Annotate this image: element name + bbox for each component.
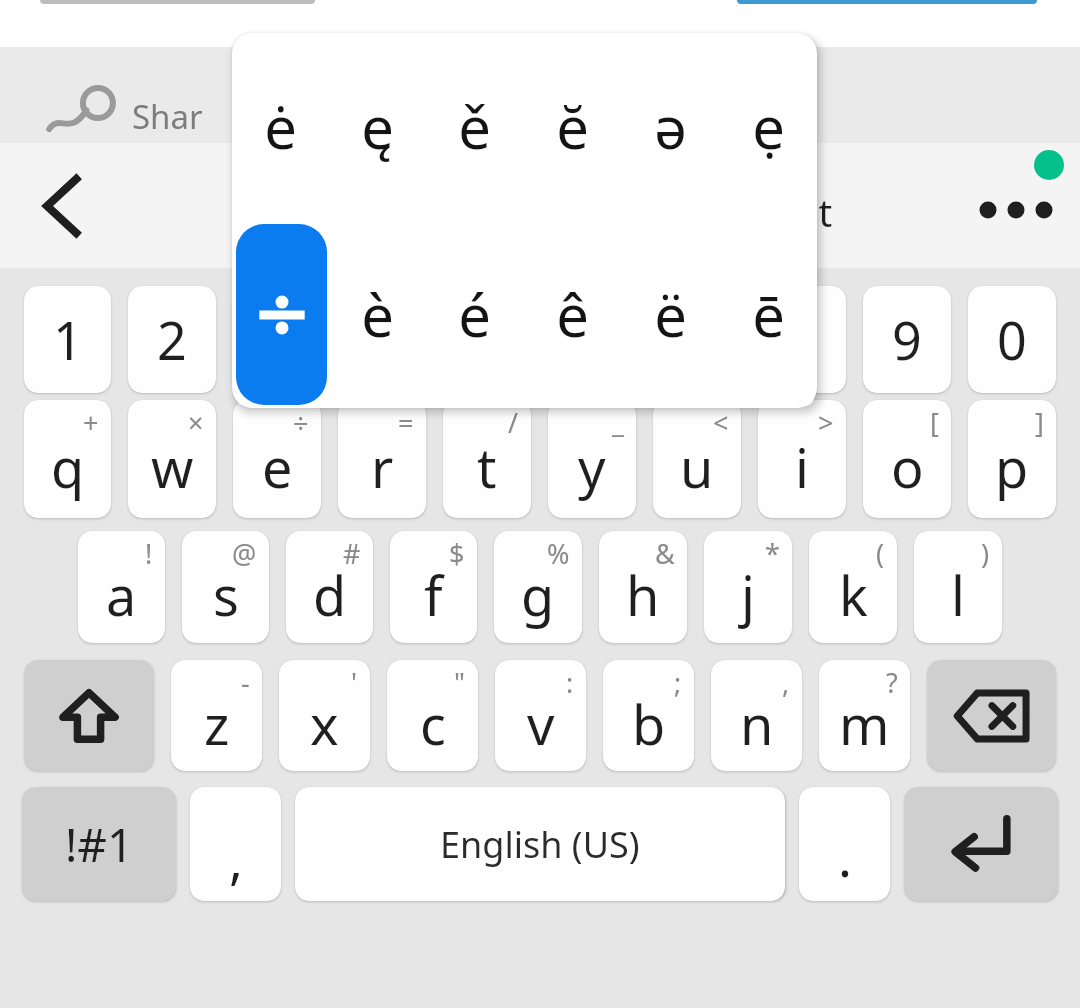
staticText: t [477,430,497,504]
staticText: d [313,558,347,632]
button[interactable]: ÷ [233,400,321,518]
button[interactable]: $ [390,531,477,643]
button[interactable]: è [329,220,426,408]
button[interactable]: 9 [863,286,951,393]
button[interactable]: !#1 [22,787,176,901]
button[interactable]: 0 [968,286,1056,393]
staticText: ! [145,535,153,572]
staticText: [ [930,404,939,441]
button[interactable]: , [711,660,802,771]
staticText: j [741,558,755,632]
button[interactable]: 5 [443,286,531,393]
button[interactable]: " [387,660,478,771]
staticText: > [818,404,834,441]
staticText: b [632,687,666,761]
button[interactable]: Shift [24,660,154,771]
staticText: m [839,687,890,761]
staticText: è [361,275,394,354]
button[interactable]: + [24,400,111,518]
staticText: , [229,823,243,894]
staticText: é [458,275,491,354]
staticText: ( [876,535,885,572]
staticText: k [839,558,868,632]
staticText: @ [232,535,257,572]
staticText: ē [752,275,785,354]
staticText: a [106,558,137,632]
button[interactable]: 6 [548,286,636,393]
button[interactable]: 8 [758,286,846,393]
staticText: u [680,430,714,504]
staticText: f [424,558,443,632]
button[interactable]: ĕ [523,33,621,220]
staticText: " [454,664,466,701]
button[interactable]: English (US) [295,787,785,901]
staticText: ; [674,664,682,701]
staticText: !#1 [65,813,134,876]
staticText: ] [1035,404,1044,441]
button[interactable]: / [443,400,531,518]
button[interactable]: Back [20,164,104,248]
button[interactable] [232,220,329,408]
button[interactable]: ə [621,33,719,220]
button[interactable]: < [653,400,741,518]
button[interactable]: Divide [236,224,327,405]
staticText: i [795,430,809,504]
staticText: ' [351,664,358,701]
button[interactable]: More options [970,160,1062,252]
button[interactable]: Enter [904,787,1058,901]
staticText: 2 [157,304,187,375]
staticText: Shar [132,94,203,139]
button[interactable]: . [799,787,890,901]
button[interactable]: ê [523,220,621,408]
button[interactable]: @ [182,531,269,643]
staticText: = [398,404,414,441]
button[interactable]: ě [426,33,523,220]
staticText: & [655,535,675,572]
staticText: q [51,430,85,504]
button[interactable]: ] [968,400,1056,518]
button[interactable]: _ [548,400,636,518]
button[interactable]: ë [621,220,719,408]
staticText: 4 [367,304,397,375]
button[interactable]: > [758,400,846,518]
staticText: ? [886,664,898,701]
button[interactable]: ? [819,660,910,771]
staticText: < [713,404,729,441]
button[interactable]: , [190,787,281,901]
button[interactable]: [ [863,400,951,518]
button[interactable]: % [494,531,582,643]
staticText: x [310,687,339,761]
button[interactable]: Backspace [927,660,1056,771]
button[interactable]: # [286,531,373,643]
button[interactable]: ( [809,531,897,643]
button[interactable]: = [338,400,426,518]
button[interactable]: 7 [653,286,741,393]
button[interactable]: ė [232,33,329,220]
button[interactable]: 2 [128,286,216,393]
staticText: ë [654,275,687,354]
button[interactable]: & [599,531,687,643]
staticText: 1 [53,304,83,375]
button[interactable]: ē [719,220,817,408]
button[interactable]: 3 [233,286,321,393]
staticText: ė [264,87,297,166]
staticText: ut [795,186,833,238]
button[interactable]: 4 [338,286,426,393]
staticText: e [262,430,293,504]
button[interactable]: ; [603,660,694,771]
button[interactable]: : [495,660,586,771]
button[interactable]: ę [329,33,426,220]
button[interactable]: ẹ [719,33,817,220]
button[interactable]: é [426,220,523,408]
button[interactable]: 1 [24,286,111,393]
button[interactable]: ' [279,660,370,771]
staticText: c [420,687,446,761]
button[interactable]: × [128,400,216,518]
button[interactable]: ! [78,531,165,643]
staticText: 9 [892,304,922,375]
button[interactable]: - [171,660,262,771]
staticText: z [204,687,230,761]
button[interactable]: ) [914,531,1002,643]
button[interactable]: * [704,531,792,643]
